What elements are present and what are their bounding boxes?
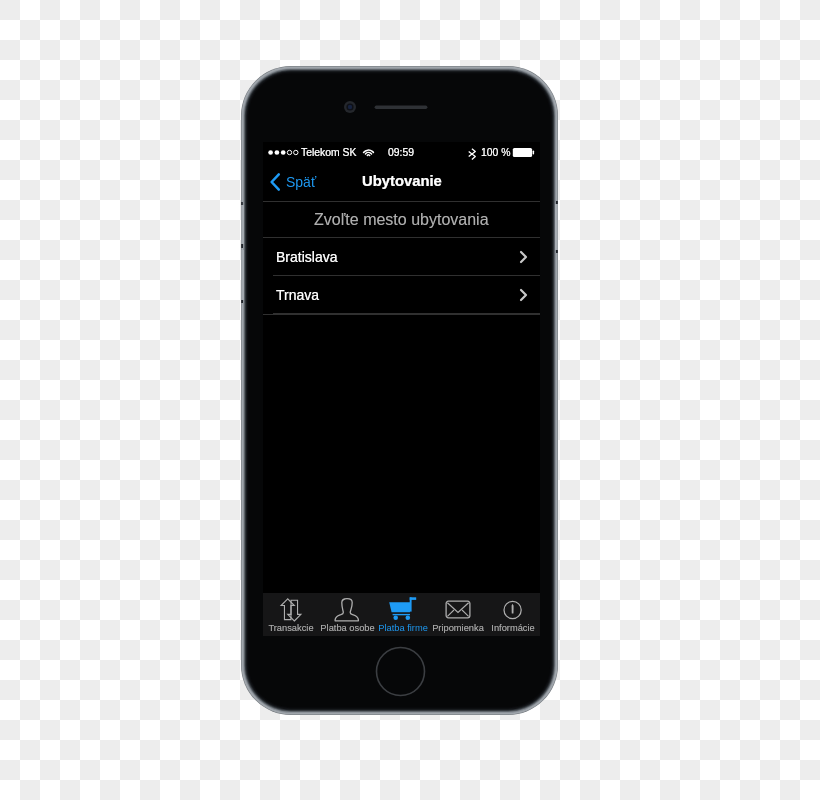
staticText: 09:59 [388, 147, 415, 159]
button[interactable]: Bratislava [263, 238, 540, 276]
staticText: Telekom SK [301, 147, 357, 159]
button[interactable]: Platba firme [375, 593, 430, 636]
staticText: 100 % [481, 147, 511, 159]
button[interactable]: Trnava [263, 276, 540, 314]
staticText: Transakcie [268, 623, 314, 633]
button[interactable]: Platba osobe [319, 593, 375, 636]
staticText: Informácie [491, 623, 535, 633]
staticText: Bratislava [276, 249, 338, 265]
button[interactable]: Informácie [485, 593, 540, 636]
button[interactable]: Transakcie [263, 593, 319, 636]
staticText: Ubytovanie [362, 173, 442, 190]
staticText: Späť [286, 174, 317, 190]
staticText: Platba firme [378, 623, 428, 633]
staticText: Platba osobe [320, 623, 375, 633]
staticText: Pripomienka [432, 623, 484, 633]
staticText: Zvoľte mesto ubytovania [314, 211, 489, 229]
button[interactable]: Pripomienka [430, 593, 485, 636]
staticText: Trnava [276, 287, 320, 303]
button[interactable]: Späť [263, 166, 325, 198]
